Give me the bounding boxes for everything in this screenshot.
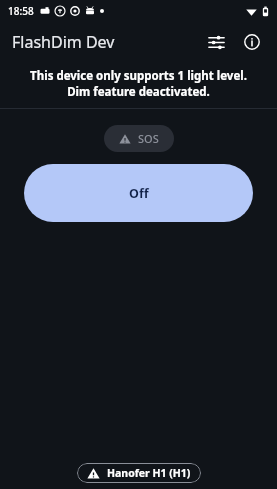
button[interactable]: Off [24,164,253,222]
button[interactable]: Info [237,27,267,57]
button[interactable]: Hanofer H1 (H1) [77,463,201,483]
staticText: Hanofer H1 (H1) [107,466,191,480]
button[interactable]: Settings [201,27,231,57]
staticText: FlashDim Dev [12,31,115,53]
staticText: Off [129,185,149,202]
button[interactable]: SOS [104,125,174,152]
staticText: This device only supports 1 light level.… [14,68,263,99]
staticText: 18:58 [8,4,34,18]
staticText: SOS [138,131,159,146]
